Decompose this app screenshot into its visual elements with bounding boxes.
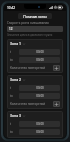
button[interactable]: to bbox=[10, 57, 60, 63]
staticText: Количество повторений bbox=[10, 66, 53, 70]
button[interactable]: t bbox=[10, 121, 60, 127]
staticText: to bbox=[10, 58, 19, 62]
staticText: 10:42 bbox=[7, 6, 16, 10]
staticText: 12 bbox=[9, 27, 13, 31]
staticText: Помпаж зоны bbox=[23, 14, 47, 19]
staticText: t bbox=[10, 122, 19, 126]
staticText: 00:00 bbox=[36, 130, 44, 134]
button[interactable]: Количество повторений bbox=[10, 65, 60, 71]
button[interactable]: Зона 1 bbox=[10, 41, 60, 46]
button[interactable]: t bbox=[10, 49, 60, 55]
button[interactable]: to bbox=[10, 93, 60, 99]
staticText: Скорость роста смешивания bbox=[7, 21, 49, 25]
staticText: 00:00 bbox=[36, 86, 44, 90]
button[interactable]: Добавить повторение bbox=[53, 101, 60, 107]
button[interactable]: Зона 2 bbox=[10, 77, 60, 82]
button[interactable]: 00:00 bbox=[19, 57, 60, 63]
button[interactable]: Помпаж зоны bbox=[18, 13, 52, 19]
button[interactable]: 00:00 bbox=[19, 49, 60, 55]
staticText: 00:00 bbox=[36, 122, 44, 126]
staticText: t bbox=[10, 50, 19, 54]
button[interactable]: Зона 3 bbox=[10, 113, 60, 118]
staticText: 00:00 bbox=[36, 94, 44, 98]
staticText: Зона 3 bbox=[10, 113, 21, 118]
button[interactable]: 12 bbox=[7, 26, 63, 32]
button[interactable]: 00:00 bbox=[19, 129, 60, 135]
button[interactable]: Добавить повторение bbox=[53, 65, 60, 71]
button[interactable]: 00:00 bbox=[19, 93, 60, 99]
button[interactable]: t bbox=[10, 85, 60, 91]
button[interactable]: 00:00 bbox=[19, 121, 60, 127]
button[interactable]: 00:00 bbox=[19, 85, 60, 91]
staticText: t bbox=[10, 86, 19, 90]
staticText: 00:00 bbox=[36, 58, 44, 62]
staticText: Количество повторений bbox=[10, 102, 53, 106]
staticText: to bbox=[10, 94, 19, 98]
staticText: Зона 2 bbox=[10, 77, 21, 82]
staticText: 00:00 bbox=[36, 50, 44, 54]
button[interactable]: Количество повторений bbox=[10, 101, 60, 107]
staticText: Зона 1 bbox=[10, 41, 21, 46]
staticText: to bbox=[10, 130, 19, 134]
button[interactable]: to bbox=[10, 129, 60, 135]
staticText: Значение цикла в диапазоне нужно bbox=[7, 33, 53, 37]
